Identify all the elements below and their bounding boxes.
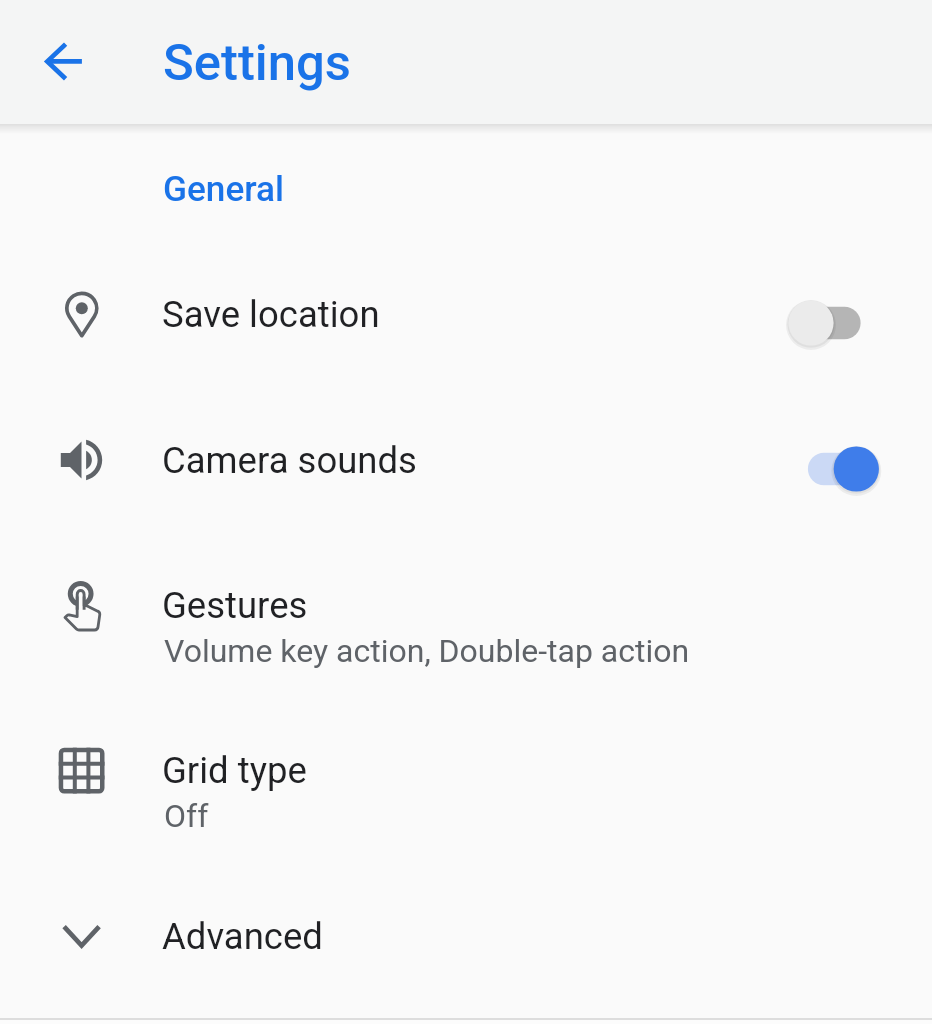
button[interactable]: Grid type [0,710,932,876]
button[interactable]: Gestures [0,545,932,711]
button[interactable]: Save location, off [782,293,886,353]
staticText: Advanced [162,915,323,958]
button[interactable]: Camera sounds, on [782,439,886,499]
button[interactable]: Camera sounds [0,399,932,545]
staticText: Save location [162,293,380,336]
staticText: Settings [163,33,351,93]
staticText: Grid type [162,749,307,792]
staticText: General [163,168,285,209]
staticText: Gestures [162,584,308,627]
staticText: Camera sounds [162,439,417,482]
button[interactable]: Advanced [0,875,932,1024]
staticText: Volume key action, Double-tap action [164,632,690,670]
button[interactable]: Save location [0,253,932,399]
staticText: Off [164,797,209,835]
button[interactable]: Back [38,37,86,85]
